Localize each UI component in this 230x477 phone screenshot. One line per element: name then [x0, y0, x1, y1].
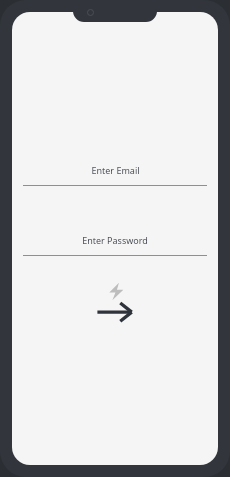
staticText: Enter Email	[91, 164, 140, 176]
button[interactable]: Enter Email	[12, 164, 218, 186]
staticText: Enter Password	[82, 234, 148, 246]
button[interactable]: Sign in	[93, 280, 137, 324]
button[interactable]: Enter Password	[12, 234, 218, 256]
